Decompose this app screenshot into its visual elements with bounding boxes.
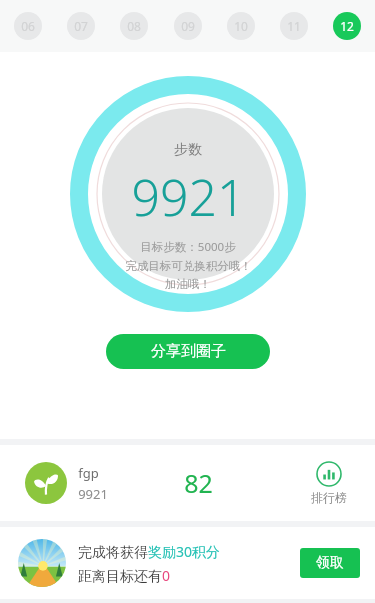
- staticText: 完成将获得奖励30积分: [78, 542, 221, 561]
- staticText: 82: [184, 466, 213, 500]
- button[interactable]: 10: [227, 12, 255, 40]
- staticText: 09: [181, 18, 195, 34]
- staticText: 06: [21, 18, 35, 34]
- button[interactable]: 分享到圈子: [106, 334, 270, 369]
- staticText: 距离目标还有0: [78, 566, 171, 585]
- button[interactable]: 08: [120, 12, 148, 40]
- staticText: 加油哦！: [165, 277, 211, 291]
- staticText: 9921: [131, 163, 246, 231]
- button[interactable]: fgp: [0, 445, 375, 521]
- button[interactable]: 领取: [300, 548, 360, 578]
- staticText: 步数: [174, 141, 202, 159]
- staticText: 9921: [78, 485, 108, 503]
- staticText: 目标步数：5000步: [140, 239, 236, 255]
- staticText: 07: [74, 18, 88, 34]
- button[interactable]: 07: [67, 12, 95, 40]
- staticText: 领取: [316, 554, 344, 572]
- staticText: 完成目标可兑换积分哦！: [125, 259, 252, 273]
- staticText: 分享到圈子: [151, 342, 226, 361]
- button[interactable]: 11: [280, 12, 308, 40]
- button[interactable]: 06: [14, 12, 42, 40]
- staticText: 11: [287, 18, 301, 34]
- button[interactable]: 排行榜: [307, 461, 351, 505]
- button[interactable]: 09: [174, 12, 202, 40]
- staticText: 08: [127, 18, 141, 34]
- staticText: 排行榜: [311, 490, 347, 505]
- staticText: fgp: [78, 464, 99, 482]
- staticText: 10: [234, 18, 248, 34]
- button[interactable]: 12: [333, 12, 361, 40]
- staticText: 12: [340, 18, 354, 34]
